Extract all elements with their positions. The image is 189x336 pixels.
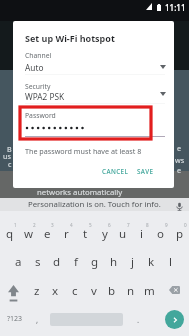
button[interactable]: SAVE bbox=[132, 163, 159, 180]
button[interactable]: l bbox=[161, 248, 180, 276]
staticText: 0 bbox=[184, 222, 187, 228]
staticText: x bbox=[52, 283, 59, 299]
button[interactable]: Shift bbox=[5, 277, 24, 306]
staticText: v bbox=[91, 283, 97, 299]
button[interactable]: f bbox=[66, 248, 85, 276]
staticText: q bbox=[6, 226, 14, 242]
staticText: p bbox=[176, 226, 184, 242]
staticText: 3 bbox=[51, 222, 54, 228]
staticText: Set up Wi-Fi hotspot bbox=[25, 32, 115, 44]
staticText: z bbox=[34, 283, 40, 299]
button[interactable]: b bbox=[102, 277, 121, 305]
staticText: 6 bbox=[108, 222, 111, 228]
staticText: d bbox=[53, 254, 61, 270]
staticText: k bbox=[148, 254, 155, 270]
staticText: y bbox=[102, 226, 108, 242]
staticText: us bbox=[3, 151, 11, 161]
staticText: n bbox=[127, 283, 135, 299]
staticText: c bbox=[72, 283, 78, 299]
staticText: t bbox=[83, 226, 88, 242]
staticText: B bbox=[7, 144, 12, 154]
staticText: 5 bbox=[89, 222, 92, 228]
staticText: WPA2 PSK bbox=[25, 91, 65, 102]
staticText: e bbox=[177, 143, 182, 153]
staticText: 1 bbox=[14, 222, 17, 228]
button[interactable]: x bbox=[46, 277, 65, 305]
button[interactable]: a bbox=[9, 248, 28, 276]
staticText: 4 bbox=[70, 222, 73, 228]
staticText: o bbox=[157, 226, 164, 242]
staticText: u bbox=[119, 226, 127, 242]
staticText: a bbox=[15, 254, 22, 270]
staticText: e bbox=[44, 226, 51, 242]
staticText: networks automatically bbox=[37, 187, 123, 198]
staticText: b bbox=[108, 283, 116, 299]
staticText: Channel bbox=[25, 51, 52, 60]
staticText: c bbox=[8, 159, 12, 169]
staticText: g bbox=[91, 254, 99, 270]
button[interactable]: o bbox=[151, 220, 170, 248]
button[interactable]: g bbox=[85, 248, 104, 276]
button[interactable]: p bbox=[170, 220, 189, 248]
staticText: 7 bbox=[127, 222, 130, 228]
button[interactable]: v bbox=[84, 277, 103, 305]
button[interactable]: r bbox=[57, 220, 76, 248]
button[interactable]: u bbox=[113, 220, 132, 248]
button[interactable]: , bbox=[30, 306, 44, 332]
button[interactable]: y bbox=[95, 220, 114, 248]
staticText: Password bbox=[25, 111, 56, 120]
button[interactable]: k bbox=[142, 248, 161, 276]
staticText: SAVE bbox=[137, 167, 154, 176]
button[interactable]: q bbox=[0, 220, 19, 248]
staticText: CANCEL bbox=[102, 167, 129, 176]
button[interactable]: d bbox=[47, 248, 66, 276]
staticText: The password must have at least 8 bbox=[25, 146, 142, 156]
button[interactable]: Personalization is on. Touch for info. bbox=[0, 198, 189, 211]
staticText: f bbox=[74, 254, 78, 270]
staticText: 11:11 bbox=[165, 2, 186, 13]
button[interactable]: Enter bbox=[165, 310, 184, 329]
button[interactable]: j bbox=[123, 248, 142, 276]
button[interactable]: s bbox=[28, 248, 47, 276]
staticText: m bbox=[144, 283, 155, 299]
button[interactable]: w bbox=[19, 220, 38, 248]
staticText: w bbox=[24, 226, 34, 242]
button[interactable]: n bbox=[121, 277, 140, 305]
staticText: 9 bbox=[165, 222, 168, 228]
staticText: l bbox=[169, 254, 172, 270]
staticText: s bbox=[35, 254, 41, 270]
button[interactable]: Backspace bbox=[164, 277, 183, 306]
button[interactable]: . bbox=[131, 306, 145, 332]
button[interactable]: m bbox=[140, 277, 159, 305]
staticText: 8 bbox=[146, 222, 149, 228]
button[interactable]: c bbox=[65, 277, 84, 305]
staticText: ws bbox=[175, 155, 185, 165]
staticText: Auto bbox=[25, 62, 44, 73]
staticText: h bbox=[110, 254, 118, 270]
staticText: i bbox=[140, 226, 143, 242]
button[interactable]: CANCEL bbox=[97, 163, 134, 180]
button[interactable]: e bbox=[38, 220, 57, 248]
staticText: ?123 bbox=[7, 314, 23, 324]
staticText: Security bbox=[25, 82, 51, 91]
staticText: j bbox=[131, 254, 134, 270]
button[interactable]: h bbox=[104, 248, 123, 276]
staticText: Personalization is on. Touch for info. bbox=[28, 199, 161, 210]
staticText: , bbox=[36, 314, 39, 325]
staticText: . bbox=[137, 314, 140, 325]
staticText: e bbox=[177, 165, 182, 175]
button[interactable]: i bbox=[132, 220, 151, 248]
button[interactable]: t bbox=[76, 220, 95, 248]
button[interactable]: Voice input bbox=[174, 201, 185, 212]
button[interactable]: ?123 bbox=[1, 306, 28, 332]
staticText: 2 bbox=[33, 222, 36, 228]
staticText: r bbox=[64, 226, 69, 242]
button[interactable]: z bbox=[27, 277, 46, 305]
